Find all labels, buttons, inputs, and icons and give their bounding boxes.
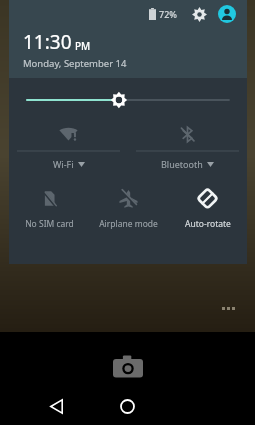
button[interactable]: Auto-rotate xyxy=(168,180,247,244)
staticText: Airplane mode xyxy=(99,218,158,230)
button[interactable]: No SIM card xyxy=(9,180,89,244)
button[interactable]: Brightness xyxy=(9,78,247,118)
button[interactable]: Home xyxy=(111,388,143,425)
button[interactable]: Wi-Fi xyxy=(9,118,128,180)
button[interactable]: User profile xyxy=(216,3,238,25)
staticText: 11:30 xyxy=(23,29,72,55)
staticText: 72% xyxy=(159,8,177,20)
button[interactable]: Back xyxy=(40,388,72,425)
staticText: Auto-rotate xyxy=(185,218,231,230)
staticText: No SIM card xyxy=(25,218,74,230)
staticText: Wi-Fi xyxy=(53,158,74,170)
staticText: PM xyxy=(75,39,91,53)
button[interactable]: Airplane mode xyxy=(89,180,168,244)
staticText: Bluetooth xyxy=(161,158,203,170)
staticText: Monday, September 14 xyxy=(23,57,127,70)
button[interactable]: Camera xyxy=(110,350,146,386)
button[interactable]: Settings xyxy=(188,3,210,25)
button[interactable]: Bluetooth xyxy=(128,118,247,180)
